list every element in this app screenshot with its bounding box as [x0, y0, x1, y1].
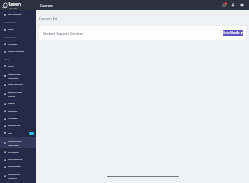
- staticText: APPS: [4, 58, 9, 60]
- staticText: College Portal Notification: [8, 73, 21, 79]
- staticText: Home: [8, 28, 14, 31]
- staticText: Team Builders: [8, 165, 21, 168]
- staticText: IT Support: [8, 117, 18, 120]
- button[interactable]: Science: [0, 100, 36, 107]
- staticText: NAVIGATION: [4, 36, 17, 38]
- staticText: DASHBOARD: [4, 21, 16, 23]
- staticText: Send Feedback: [8, 13, 22, 16]
- button[interactable]: Instagram: [0, 107, 36, 115]
- button[interactable]: College Portal Notification: [0, 70, 36, 81]
- button[interactable]: Student Support Services: [39, 26, 246, 40]
- button[interactable]: Moodle Course Information: [0, 137, 36, 148]
- staticText: Science: [8, 102, 15, 105]
- button[interactable]: Student Organizer: [0, 48, 36, 55]
- button[interactable]: Tech Workspace: [0, 156, 36, 163]
- staticText: Go to Moodle: [223, 31, 240, 35]
- staticText: Courses list: [39, 16, 58, 21]
- button[interactable]: Forms: [0, 62, 36, 70]
- button[interactable]: Learning Hub: [0, 122, 36, 129]
- button[interactable]: Home: [0, 26, 36, 33]
- button[interactable]: Safeguard by NoteMark: [0, 170, 36, 182]
- staticText: Safety Handbook: [8, 83, 24, 86]
- button[interactable]: Account: [230, 2, 236, 8]
- staticText: Instagram: [8, 110, 18, 113]
- button[interactable]: Send Feedback: [0, 11, 36, 18]
- button[interactable]: Log out: [239, 2, 245, 8]
- staticText: Student Organizer: [8, 50, 25, 53]
- staticText: Forms: [8, 65, 14, 68]
- button[interactable]: My Progress: [0, 148, 36, 156]
- button[interactable]: IT Support: [0, 40, 36, 48]
- staticText: My Progress: [8, 151, 19, 154]
- button[interactable]: Notifications: [221, 2, 227, 8]
- staticText: Explore & North Campus: [8, 91, 23, 97]
- staticText: Moodle Course Information: [8, 140, 22, 146]
- staticText: Courses: [40, 3, 53, 8]
- button[interactable]: Mail: [0, 129, 36, 137]
- button[interactable]: IT Support: [0, 115, 36, 122]
- staticText: Student Support Services: [43, 31, 83, 36]
- staticText: Tech Workspace: [8, 158, 23, 161]
- button[interactable]: Safety Handbook: [0, 81, 36, 88]
- staticText: laven: [9, 1, 21, 7]
- button[interactable]: Go to Moodle: [223, 30, 243, 36]
- staticText: Mail: [8, 132, 12, 135]
- staticText: Safeguard by NoteMark: [8, 173, 20, 179]
- staticText: Learning Hub: [8, 124, 21, 127]
- staticText: IT Support: [8, 43, 18, 46]
- button[interactable]: Explore & North Campus: [0, 88, 36, 100]
- button[interactable]: Team Builders: [0, 163, 36, 170]
- staticText: COLLEGE: [9, 7, 18, 9]
